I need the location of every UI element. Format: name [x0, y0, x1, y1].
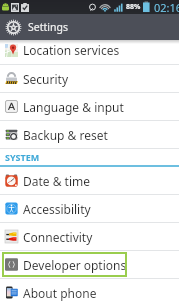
staticText: Settings — [28, 20, 68, 34]
staticText: Location services — [23, 42, 120, 58]
staticText: Date & time — [23, 173, 91, 189]
staticText: SYSTEM — [5, 151, 40, 163]
button[interactable]: Settings — [0, 14, 179, 40]
button[interactable]: Developer options — [2, 252, 127, 277]
staticText: 02:16 — [154, 0, 179, 14]
button[interactable]: Backup & reset — [0, 121, 179, 148]
button[interactable]: Location services — [0, 40, 179, 64]
staticText: Connectivity — [23, 229, 93, 245]
button[interactable]: Accessibility — [0, 195, 179, 222]
staticText: Language & input — [23, 99, 124, 115]
button[interactable]: Security — [0, 65, 179, 92]
button[interactable]: Connectivity — [0, 223, 179, 250]
staticText: Accessibility — [23, 201, 91, 217]
button[interactable]: Language & input — [0, 93, 179, 120]
staticText: Backup & reset — [23, 127, 108, 143]
staticText: Security — [23, 71, 69, 87]
staticText: Developer options — [23, 257, 127, 273]
staticText: 88% — [126, 2, 141, 12]
button[interactable]: About phone — [0, 279, 179, 306]
button[interactable]: Date & time — [0, 167, 179, 194]
staticText: About phone — [23, 285, 97, 301]
